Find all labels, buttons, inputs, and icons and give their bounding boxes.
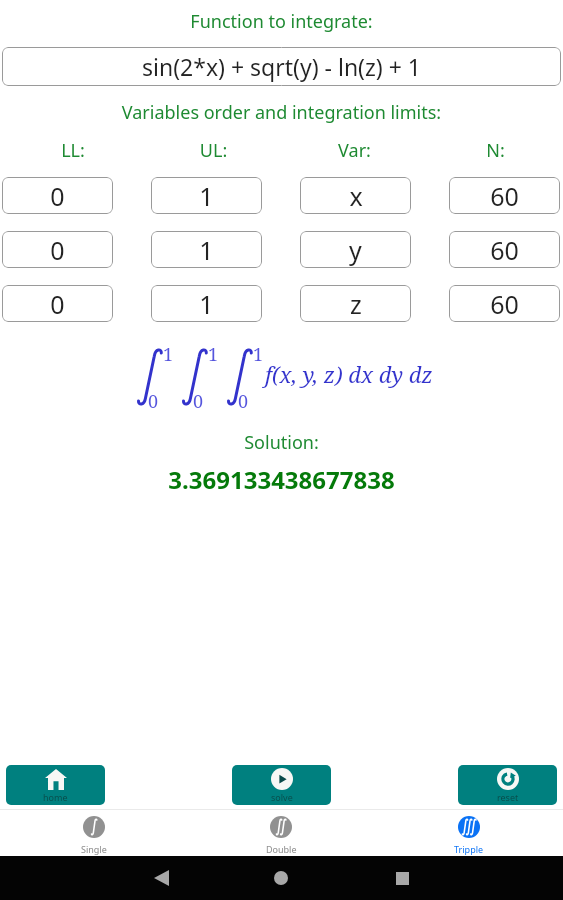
staticText: 0 [50,179,65,213]
button[interactable]: Recent apps [384,860,420,896]
button[interactable]: Single [0,816,187,855]
staticText: UL: [143,138,284,163]
staticText: Solution: [0,430,563,455]
button[interactable]: Back [143,860,179,896]
staticText: Function to integrate: [0,9,563,34]
staticText: Double [266,843,297,855]
staticText: 1 [253,342,264,367]
staticText: LL: [3,138,143,163]
staticText: 3.369133438677838 [0,463,563,496]
button[interactable]: y [300,231,411,268]
staticText: Variables order and integration limits: [0,100,563,125]
staticText: 0 [238,389,249,414]
staticText: 1 [199,287,214,321]
button[interactable]: 1 [151,231,262,268]
button[interactable]: Double [187,816,375,855]
staticText: 1 [208,342,219,367]
staticText: N: [425,138,563,163]
staticText: 0 [50,233,65,267]
button[interactable]: 60 [449,177,560,214]
staticText: 60 [490,233,519,267]
button[interactable]: 0 [2,177,113,214]
button[interactable]: 60 [449,285,560,322]
button[interactable]: 1 [151,285,262,322]
staticText: z [350,287,362,321]
staticText: 0 [148,389,159,414]
staticText: 1 [199,233,214,267]
staticText: 0 [193,389,204,414]
button[interactable]: Tripple [375,816,563,855]
button[interactable]: 0 [2,285,113,322]
staticText: 1 [163,342,174,367]
staticText: f(x, y, z) dx dy dz [265,359,433,389]
staticText: 0 [50,287,65,321]
button[interactable]: 60 [449,231,560,268]
button[interactable]: solve [232,765,331,805]
staticText: y [349,233,362,267]
staticText: Single [81,843,107,855]
button[interactable]: reset [458,765,557,805]
button[interactable]: z [300,285,411,322]
button[interactable]: Home [263,860,299,896]
staticText: Var: [284,138,425,163]
button[interactable]: x [300,177,411,214]
staticText: sin(2*x) + sqrt(y) - ln(z) + 1 [142,51,421,82]
button[interactable]: home [6,765,105,805]
staticText: x [349,179,363,213]
button[interactable]: 1 [151,177,262,214]
staticText: 1 [199,179,214,213]
staticText: Tripple [454,843,484,855]
staticText: home [43,791,68,803]
staticText: solve [271,791,293,803]
staticText: reset [497,791,519,803]
button[interactable]: sin(2*x) + sqrt(y) - ln(z) + 1 [2,47,561,86]
button[interactable]: 0 [2,231,113,268]
staticText: 60 [490,179,519,213]
staticText: 60 [490,287,519,321]
